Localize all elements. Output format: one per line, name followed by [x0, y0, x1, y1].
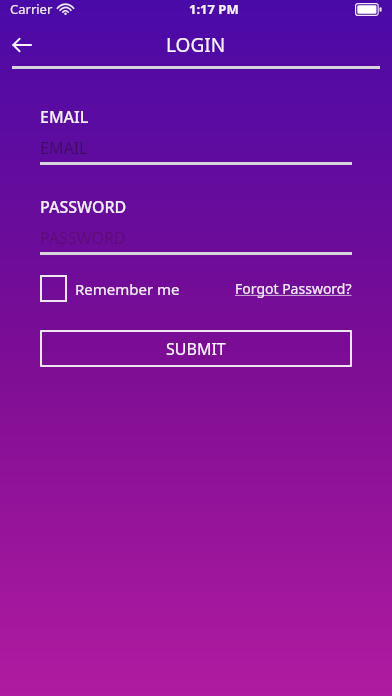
staticText: Forgot Password? [235, 279, 352, 298]
staticText: Remember me [75, 279, 180, 299]
staticText: SUBMIT [166, 338, 226, 360]
button[interactable]: EMAIL [40, 137, 352, 159]
button[interactable]: Remember me [40, 275, 180, 302]
staticText: 1:17 PM [189, 0, 239, 18]
staticText: EMAIL [40, 106, 89, 128]
button[interactable]: Back [0, 24, 44, 66]
button[interactable]: SUBMIT [40, 330, 352, 367]
button[interactable]: PASSWORD [40, 227, 352, 249]
staticText: PASSWORD [40, 227, 126, 249]
staticText: Carrier [10, 0, 53, 18]
staticText: LOGIN [166, 32, 226, 58]
staticText: EMAIL [40, 137, 88, 159]
button[interactable]: Forgot Password? [235, 279, 352, 298]
staticText: PASSWORD [40, 196, 127, 218]
